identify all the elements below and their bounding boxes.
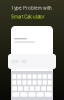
- staticText: Smart Calculator: [11, 14, 45, 19]
- staticText: Type Problem with: [11, 5, 52, 11]
